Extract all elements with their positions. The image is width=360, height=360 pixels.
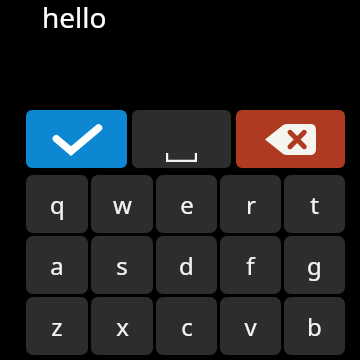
button[interactable]: d — [156, 236, 217, 294]
button[interactable]: r — [220, 175, 281, 233]
button[interactable]: c — [156, 297, 217, 355]
staticText: a — [50, 249, 64, 282]
staticText: r — [246, 188, 256, 221]
button[interactable]: z — [26, 297, 88, 355]
button[interactable]: Space — [132, 110, 231, 168]
button[interactable]: t — [284, 175, 345, 233]
staticText: q — [50, 188, 65, 221]
staticText: f — [246, 249, 255, 282]
staticText: hello — [42, 0, 107, 36]
button[interactable]: s — [91, 236, 153, 294]
button[interactable]: f — [220, 236, 281, 294]
button[interactable]: a — [26, 236, 88, 294]
button[interactable]: v — [220, 297, 281, 355]
button[interactable]: g — [284, 236, 345, 294]
staticText: t — [310, 188, 319, 221]
staticText: z — [51, 310, 63, 343]
button[interactable]: e — [156, 175, 217, 233]
staticText: v — [244, 310, 257, 343]
staticText: g — [307, 249, 322, 282]
staticText: c — [181, 310, 193, 343]
button[interactable]: Backspace — [236, 110, 345, 168]
button[interactable]: x — [91, 297, 153, 355]
button[interactable]: q — [26, 175, 88, 233]
staticText: d — [179, 249, 194, 282]
button[interactable]: Accept — [26, 110, 127, 168]
button[interactable]: w — [91, 175, 153, 233]
staticText: e — [180, 188, 194, 221]
staticText: x — [116, 310, 129, 343]
staticText: b — [307, 310, 322, 343]
staticText: w — [113, 188, 132, 221]
staticText: s — [116, 249, 128, 282]
button[interactable]: b — [284, 297, 345, 355]
